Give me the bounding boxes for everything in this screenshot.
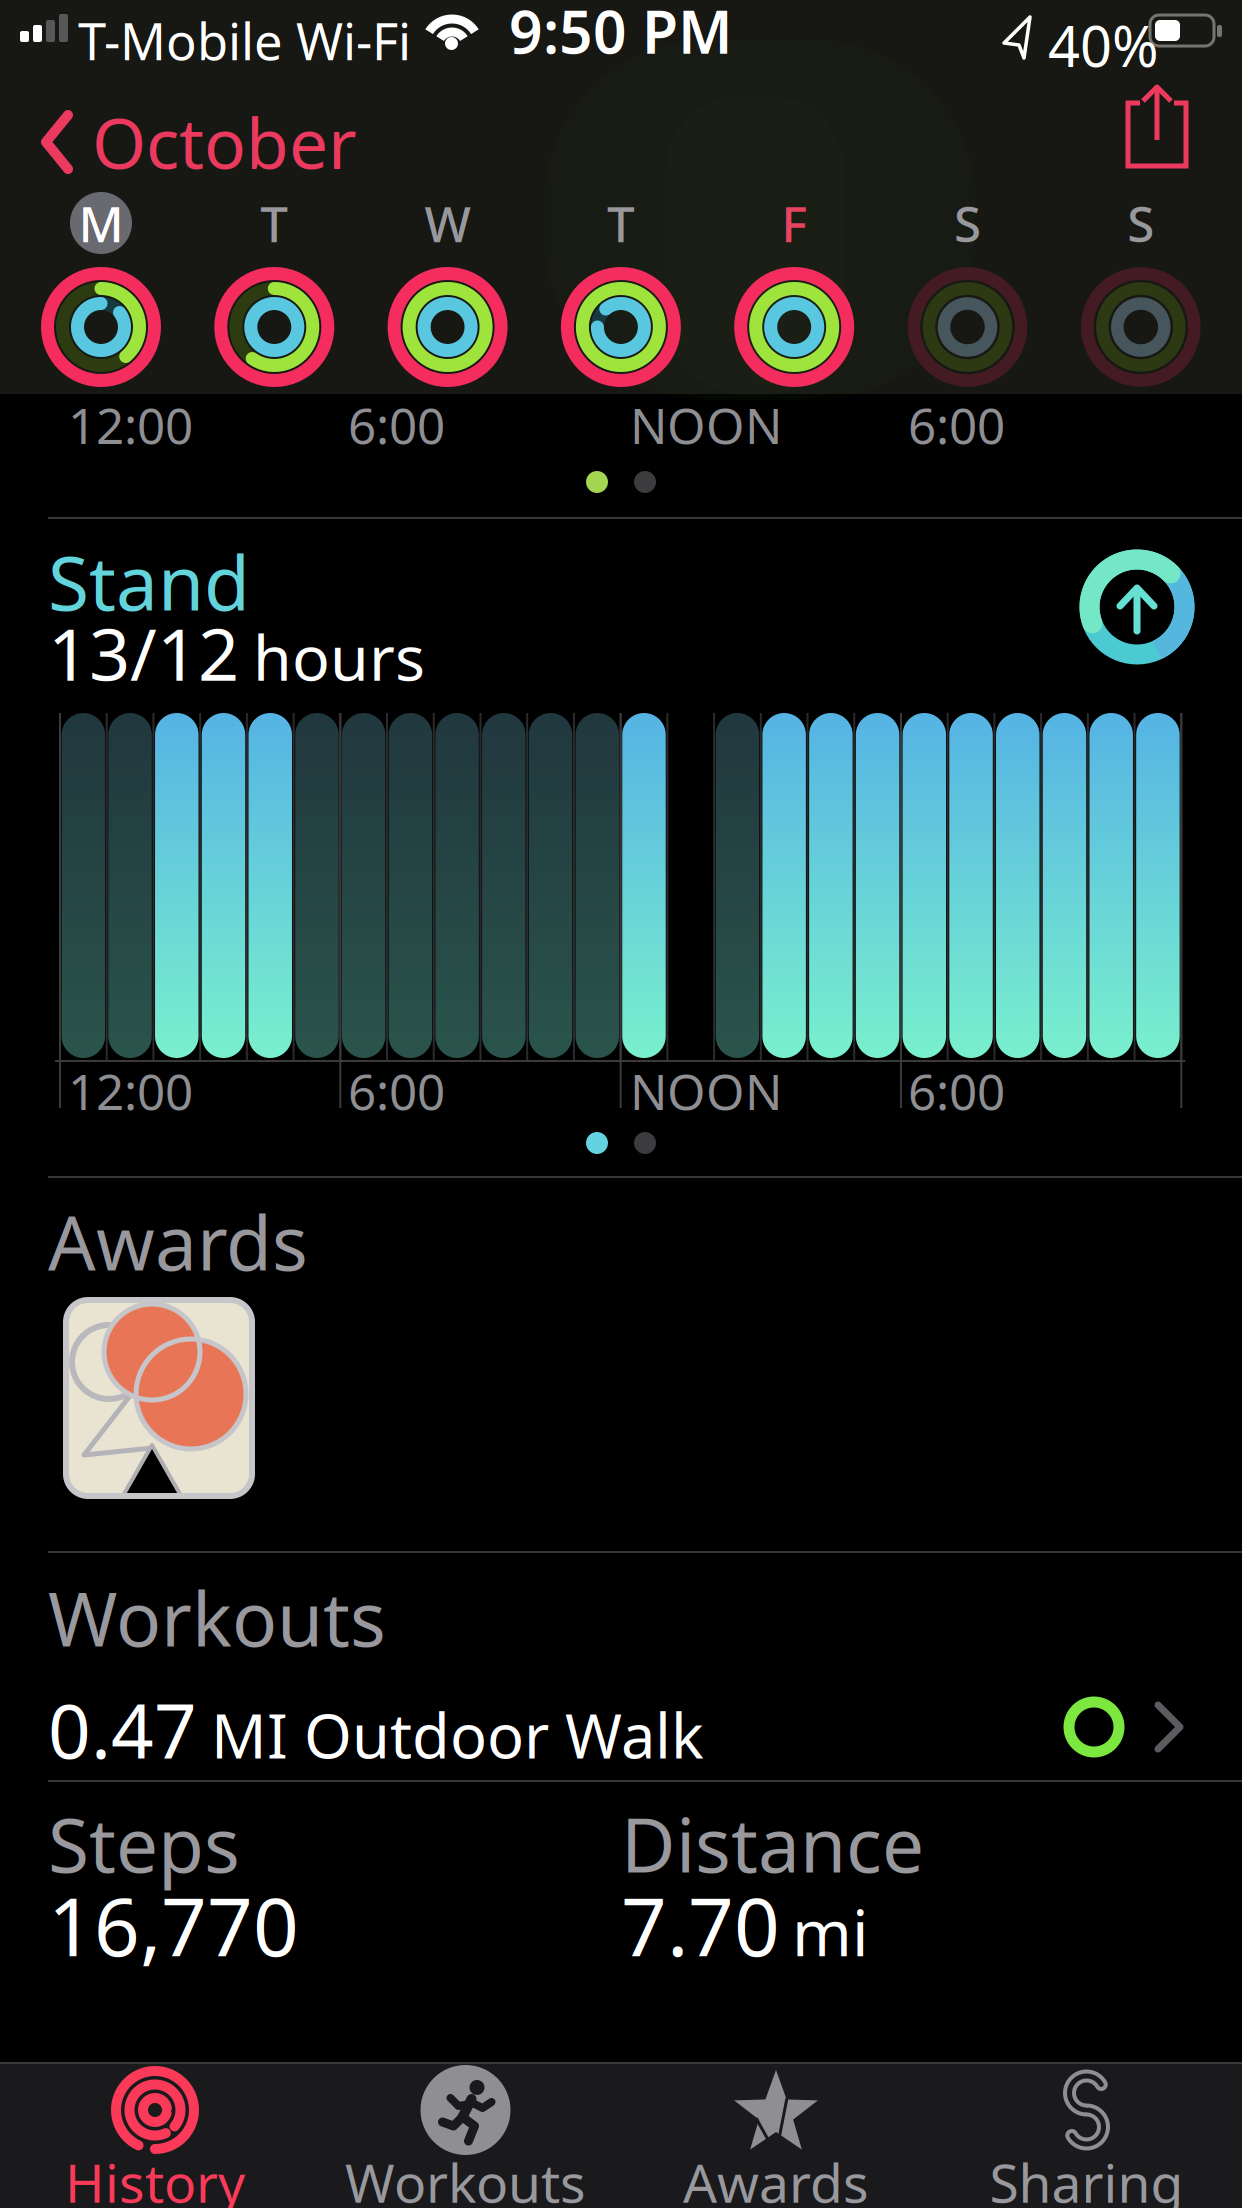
staticText: 16,770 (48, 1872, 299, 1978)
staticText: T (260, 190, 288, 256)
staticText: T (607, 190, 635, 256)
staticText: Sharing (989, 2147, 1183, 2208)
staticText: hours (253, 615, 425, 698)
button[interactable] (1126, 86, 1188, 168)
staticText: S (1127, 190, 1154, 256)
button[interactable] (66, 1300, 252, 1496)
button[interactable]: F (707, 190, 881, 400)
button[interactable]: S (880, 190, 1054, 400)
staticText: 6:00 (908, 1058, 1005, 1123)
staticText: mi (792, 1889, 869, 1974)
staticText: Steps (48, 1794, 240, 1893)
button[interactable]: 0.47 (0, 1670, 1242, 1780)
staticText: 12:00 (68, 1058, 193, 1123)
staticText: October (92, 96, 357, 188)
staticText: 6:00 (348, 1058, 445, 1123)
button[interactable]: W (361, 190, 535, 400)
button[interactable]: Sharing (931, 2062, 1242, 2208)
staticText: Workouts (345, 2147, 586, 2208)
button[interactable]: S (1054, 190, 1228, 400)
staticText: 40% (1048, 8, 1159, 82)
staticText: Distance (621, 1794, 924, 1893)
staticText: Workouts (48, 1568, 386, 1667)
staticText: 7.70 (621, 1872, 780, 1978)
staticText: 6:00 (908, 392, 1005, 457)
staticText: MI Outdoor Walk (211, 1694, 704, 1775)
button[interactable]: History (0, 2062, 310, 2208)
staticText: Stand (48, 532, 250, 631)
staticText: T-Mobile Wi-Fi (78, 7, 411, 74)
button[interactable]: Awards (621, 2062, 931, 2208)
staticText: 13/12 (48, 605, 239, 701)
button[interactable]: T (534, 190, 708, 400)
button[interactable]: T (187, 190, 361, 400)
staticText: 0.47 (48, 1680, 197, 1779)
staticText: NOON (630, 1058, 782, 1123)
staticText: Awards (48, 1192, 308, 1291)
button[interactable]: M (14, 190, 188, 400)
staticText: S (954, 190, 981, 256)
staticText: Awards (683, 2147, 869, 2208)
button[interactable]: October (44, 96, 357, 188)
staticText: W (425, 190, 471, 256)
staticText: F (781, 190, 807, 256)
staticText: History (65, 2147, 245, 2208)
staticText: 9:50 PM (509, 0, 733, 70)
staticText: M (78, 190, 123, 256)
button[interactable]: Workouts (310, 2062, 621, 2208)
staticText: 6:00 (348, 392, 445, 457)
staticText: 12:00 (68, 392, 193, 457)
staticText: NOON (630, 392, 782, 457)
